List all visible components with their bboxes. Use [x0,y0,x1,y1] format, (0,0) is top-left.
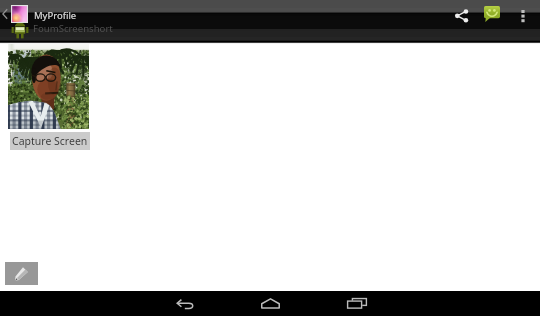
button[interactable]: Share [453,7,470,24]
staticText: MyProfile [34,9,77,22]
staticText: Capture Screen [12,134,88,148]
button[interactable]: Messaging [484,6,500,22]
button[interactable]: More options [517,9,529,24]
staticText: FoumScreenshort [33,22,113,35]
button[interactable]: Capture Screen [10,132,90,150]
button[interactable]: Back [173,295,198,312]
button[interactable]: Recent apps [344,295,369,312]
button[interactable]: Edit [5,262,38,285]
button[interactable]: Navigate up [0,8,9,20]
button[interactable]: Home [258,295,283,312]
